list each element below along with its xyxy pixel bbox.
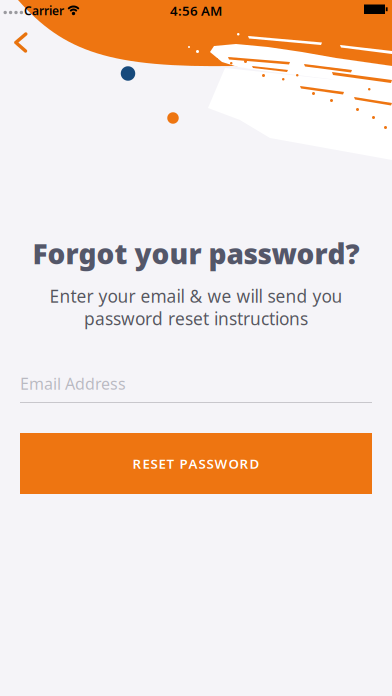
staticText: R E S E T P A S S W O R D — [132, 455, 259, 472]
staticText: password reset instructions — [84, 307, 308, 330]
staticText: Email Address — [20, 373, 126, 394]
button[interactable]: R E S E T P A S S W O R D — [20, 433, 372, 494]
staticText: Carrier — [24, 2, 64, 18]
staticText: Forgot your password? — [32, 235, 359, 272]
staticText: Enter your email & we will send you — [49, 284, 342, 307]
staticText: 4:56 AM — [170, 2, 222, 19]
button[interactable]: Email Address — [20, 368, 372, 412]
button[interactable]: Back — [8, 30, 38, 54]
